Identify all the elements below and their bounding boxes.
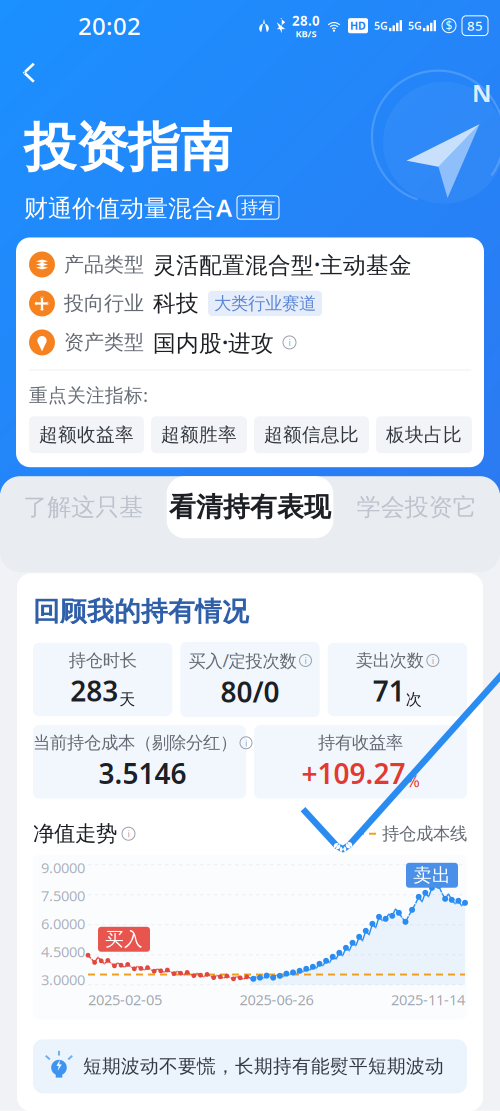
- staticText: %: [406, 770, 419, 792]
- staticText: 买入/定投次数: [188, 649, 296, 672]
- staticText: 超额收益率: [39, 423, 134, 446]
- staticText: 6.0000: [41, 914, 85, 933]
- staticText: 资产类型: [64, 330, 144, 355]
- button[interactable]: 学会投资它: [333, 476, 500, 538]
- staticText: 超额胜率: [161, 423, 237, 446]
- staticText: 大类行业赛道: [214, 293, 316, 314]
- staticText: 看清持有表现: [169, 491, 331, 524]
- button[interactable]: 超额信息比: [254, 416, 369, 453]
- staticText: 9.0000: [41, 858, 85, 877]
- staticText: HD: [350, 19, 366, 33]
- staticText: 回顾我的持有情况: [33, 595, 249, 628]
- staticText: 持仓成本线: [382, 823, 467, 844]
- button[interactable]: 了解这只基: [0, 476, 167, 538]
- staticText: 持有收益率: [318, 732, 403, 753]
- staticText: 5G: [374, 19, 388, 33]
- staticText: 3.5146: [98, 754, 186, 792]
- staticText: 灵活配置混合型·主动基金: [153, 249, 412, 279]
- staticText: i: [432, 654, 434, 667]
- staticText: 重点关注指标:: [29, 382, 148, 407]
- staticText: 卖出次数: [356, 650, 424, 671]
- staticText: 学会投资它: [357, 492, 477, 522]
- staticText: KB/S: [295, 27, 316, 40]
- staticText: 财通价值动量混合A: [24, 192, 232, 223]
- staticText: 7.5000: [41, 886, 85, 905]
- staticText: 71: [373, 672, 405, 709]
- staticText: N: [472, 77, 492, 109]
- staticText: i: [127, 827, 129, 840]
- button[interactable]: 板块占比: [376, 416, 472, 453]
- staticText: 投资指南: [24, 116, 232, 180]
- staticText: i: [245, 737, 247, 749]
- staticText: 投向行业: [64, 291, 144, 316]
- staticText: 超额信息比: [264, 423, 359, 446]
- staticText: 国内股·进攻: [153, 327, 274, 357]
- staticText: 卖出: [413, 864, 451, 887]
- staticText: 产品类型: [64, 252, 144, 277]
- staticText: 2025-11-14: [391, 990, 465, 1009]
- staticText: 次: [406, 690, 422, 709]
- staticText: $: [445, 18, 452, 34]
- staticText: 持仓时长: [69, 650, 137, 671]
- staticText: 板块占比: [386, 423, 462, 446]
- staticText: 3.0000: [41, 970, 85, 989]
- button[interactable]: 看清持有表现: [167, 476, 333, 538]
- staticText: 当前持仓成本（剔除分红）: [33, 732, 237, 753]
- button[interactable]: 超额胜率: [151, 416, 247, 453]
- staticText: 净值走势: [33, 821, 117, 847]
- button[interactable]: 超额收益率: [29, 416, 144, 453]
- staticText: +109.27: [301, 754, 405, 792]
- staticText: 283: [70, 672, 118, 709]
- staticText: 4.5000: [41, 942, 85, 961]
- staticText: 短期波动不要慌，长期持有能熨平短期波动: [83, 1055, 444, 1078]
- staticText: 20:02: [78, 10, 141, 42]
- staticText: 5G: [408, 19, 422, 33]
- staticText: 2025-06-26: [239, 990, 313, 1009]
- staticText: 80/0: [220, 673, 279, 710]
- staticText: i: [288, 336, 290, 349]
- staticText: 了解这只基: [23, 492, 143, 522]
- staticText: 85: [467, 17, 483, 34]
- staticText: 科技: [153, 289, 199, 317]
- button[interactable]: Back: [6, 52, 52, 94]
- staticText: 持有: [241, 197, 275, 218]
- staticText: 28.0: [292, 12, 320, 29]
- staticText: i: [304, 654, 306, 667]
- staticText: 2025-02-05: [88, 990, 162, 1009]
- staticText: 买入: [105, 928, 143, 951]
- staticText: 天: [119, 690, 135, 709]
